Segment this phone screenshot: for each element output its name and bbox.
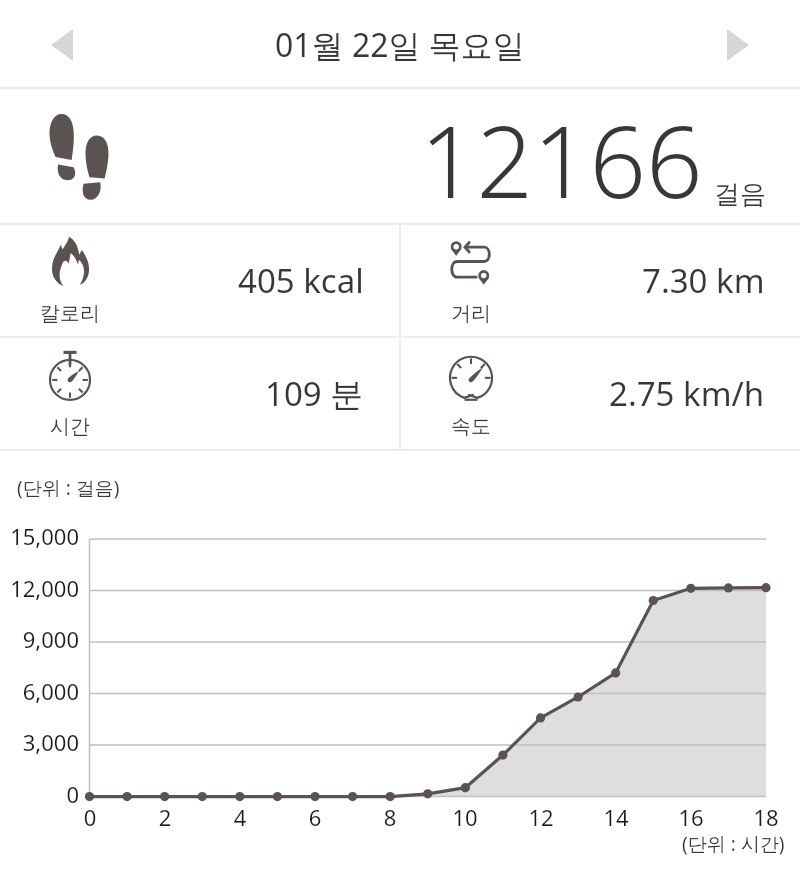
staticText: 14 xyxy=(586,802,646,832)
staticText: 109 분 xyxy=(265,371,364,416)
staticText: 6,000 xyxy=(1,676,79,706)
button[interactable]: 칼로리 xyxy=(0,225,399,336)
staticText: 2 xyxy=(135,802,195,832)
staticText: 3,000 xyxy=(1,727,79,757)
staticText: 8 xyxy=(360,802,420,832)
staticText: 0 xyxy=(1,779,79,809)
staticText: (단위 : 걸음) xyxy=(17,475,120,501)
staticText: 0 xyxy=(60,802,120,832)
staticText: 속도 xyxy=(421,414,521,439)
staticText: 걸음 xyxy=(714,178,766,211)
staticText: 칼로리 xyxy=(20,301,120,326)
staticText: 9,000 xyxy=(1,624,79,654)
staticText: 2.75 km/h xyxy=(609,371,765,416)
staticText: 12 xyxy=(511,802,571,832)
staticText: 01월 22일 목요일 xyxy=(275,23,525,67)
staticText: (단위 : 시간) xyxy=(682,831,785,857)
button[interactable]: 속도 xyxy=(401,338,800,449)
staticText: 12,000 xyxy=(1,573,79,603)
staticText: 4 xyxy=(210,802,270,832)
staticText: 405 kcal xyxy=(238,258,364,303)
staticText: 15,000 xyxy=(1,521,79,551)
staticText: 10 xyxy=(435,802,495,832)
staticText: 6 xyxy=(285,802,345,832)
button[interactable]: 거리 xyxy=(401,225,800,336)
button[interactable]: 시간 xyxy=(0,338,399,449)
staticText: 거리 xyxy=(421,301,521,326)
button[interactable]: Previous day xyxy=(30,13,94,77)
staticText: 18 xyxy=(736,802,796,832)
staticText: 시간 xyxy=(20,414,120,439)
button[interactable]: Next day xyxy=(706,13,770,77)
staticText: 7.30 km xyxy=(642,258,765,303)
staticText: 16 xyxy=(661,802,721,832)
staticText: 12166 xyxy=(420,92,703,227)
button[interactable]: 12166 xyxy=(0,89,800,225)
